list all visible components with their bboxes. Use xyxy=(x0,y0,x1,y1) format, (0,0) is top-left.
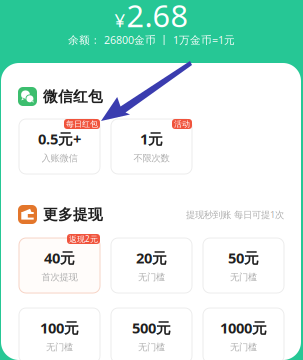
staticText: 余额： 26800金币 丨 1万金币=1元 xyxy=(68,33,235,47)
button[interactable]: 50元 xyxy=(203,238,284,293)
staticText: 无门槛 xyxy=(138,341,165,353)
staticText: 无门槛 xyxy=(138,271,165,283)
staticText: 无门槛 xyxy=(230,271,257,283)
staticText: 1元 xyxy=(140,129,163,148)
staticText: 500元 xyxy=(132,318,171,337)
staticText: 每日红包 xyxy=(66,119,98,129)
staticText: 无门槛 xyxy=(230,341,257,353)
staticText: 入账微信 xyxy=(41,152,77,164)
staticText: 更多提现 xyxy=(43,205,103,223)
button[interactable]: 0.5元+ xyxy=(19,119,100,174)
staticText: ¥ xyxy=(114,8,125,32)
staticText: 首次提现 xyxy=(41,271,77,283)
staticText: 活动 xyxy=(174,119,190,129)
staticText: 0.5元+ xyxy=(38,129,81,148)
staticText: 不限次数 xyxy=(133,152,169,164)
staticText: 50元 xyxy=(228,248,259,267)
staticText: 微信红包 xyxy=(43,87,103,105)
staticText: 提现秒到账 每日可提1次 xyxy=(186,208,284,221)
staticText: 1000元 xyxy=(220,318,267,337)
button[interactable]: 500元 xyxy=(111,308,192,360)
button[interactable]: 1000元 xyxy=(203,308,284,360)
staticText: 2.68 xyxy=(126,0,188,36)
button[interactable]: 1元 xyxy=(111,119,192,174)
staticText: 40元 xyxy=(44,248,75,267)
button[interactable]: 20元 xyxy=(111,238,192,293)
staticText: 返现2元 xyxy=(69,234,98,244)
staticText: 20元 xyxy=(136,248,167,267)
staticText: 100元 xyxy=(40,318,79,337)
button[interactable]: 100元 xyxy=(19,308,100,360)
button[interactable]: 40元 xyxy=(19,238,100,293)
staticText: 无门槛 xyxy=(46,341,73,353)
